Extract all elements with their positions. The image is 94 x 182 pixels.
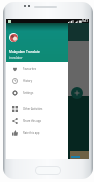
button[interactable]: History [6, 75, 68, 87]
staticText: Favourites [23, 67, 37, 71]
staticText: History [23, 79, 33, 83]
staticText: Settings [23, 91, 34, 95]
staticText: 9:41 [82, 19, 88, 23]
button[interactable]: Settings [6, 87, 68, 99]
staticText: Malayalam Translate [9, 50, 40, 54]
staticText: Rate this app [23, 131, 40, 135]
staticText: Other Activities [23, 107, 43, 111]
staticText: Translate [24, 29, 46, 36]
button[interactable]: Compose [71, 87, 83, 99]
staticText: Share this app [23, 119, 42, 123]
button[interactable]: Rate this app [6, 127, 68, 139]
button[interactable]: Share this app [6, 115, 68, 127]
staticText: translator [9, 56, 23, 60]
button[interactable]: Other Activities [6, 103, 68, 115]
button[interactable]: Favourites [6, 63, 68, 75]
button[interactable] [6, 19, 89, 159]
button[interactable]: Profile picture [9, 33, 18, 42]
